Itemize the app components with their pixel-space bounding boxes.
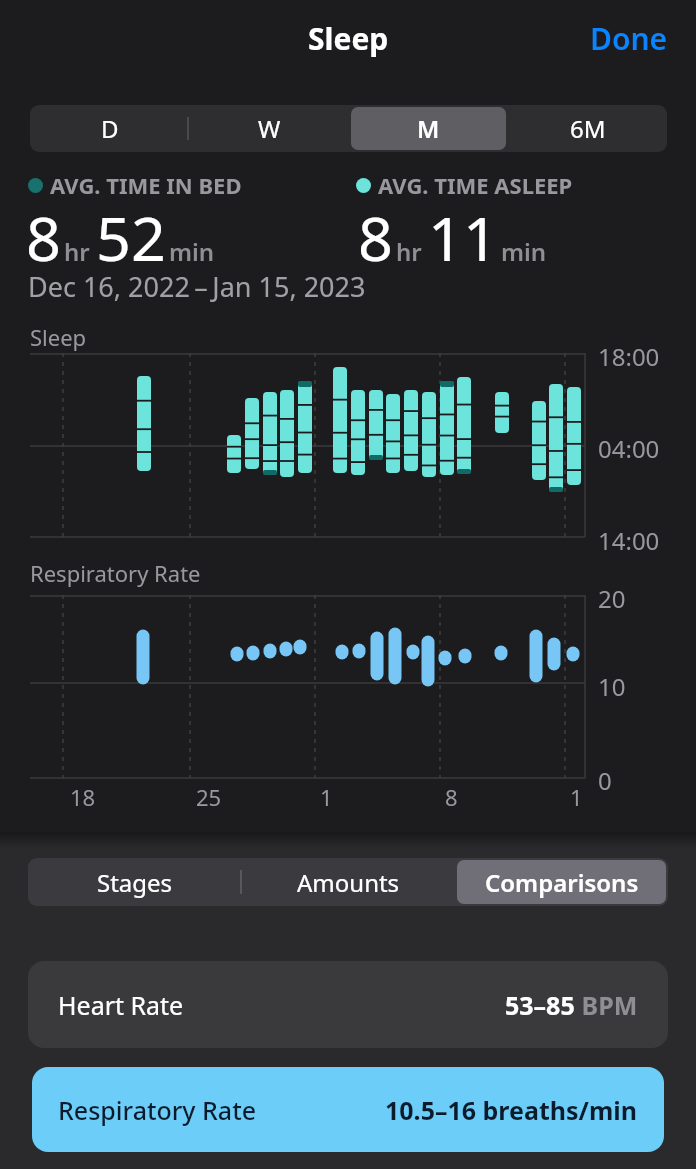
staticText: 20 — [598, 582, 626, 615]
staticText: Dec 16, 2022 – Jan 15, 2023 — [28, 268, 366, 305]
staticText: Heart Rate — [58, 988, 184, 1022]
staticText: 18:00 — [598, 340, 660, 373]
staticText: Sleep — [308, 18, 389, 59]
staticText: Stages — [97, 866, 173, 899]
staticText: W — [258, 112, 281, 145]
staticText: 10.5–16 breaths/min — [385, 1093, 638, 1127]
button[interactable]: Done — [590, 18, 668, 59]
staticText: min — [501, 235, 547, 268]
button[interactable]: Comparisons — [455, 858, 668, 906]
staticText: hr — [64, 235, 90, 268]
staticText: 8 — [26, 196, 61, 279]
staticText: 04:00 — [598, 432, 660, 465]
staticText: Respiratory Rate — [30, 558, 201, 588]
staticText: 6M — [570, 112, 606, 145]
staticText: min — [169, 235, 215, 268]
staticText: hr — [396, 235, 422, 268]
button[interactable]: D — [30, 105, 190, 152]
staticText: AVG. TIME IN BED — [50, 170, 242, 200]
staticText: M — [417, 112, 440, 145]
staticText: Amounts — [297, 866, 400, 899]
staticText: 18 — [70, 782, 96, 812]
staticText: D — [101, 112, 119, 145]
staticText: 25 — [196, 782, 222, 812]
button[interactable]: M — [349, 105, 508, 152]
staticText: 10 — [598, 670, 626, 703]
staticText: 0 — [598, 764, 612, 797]
staticText: Sleep — [30, 322, 87, 352]
staticText: 1 — [320, 782, 333, 812]
button[interactable]: W — [190, 105, 349, 152]
staticText: 52 — [96, 196, 166, 279]
button[interactable]: Stages — [28, 858, 242, 906]
staticText: AVG. TIME ASLEEP — [378, 170, 573, 200]
staticText: 11 — [428, 196, 498, 279]
button[interactable]: Amounts — [242, 858, 455, 906]
button[interactable]: 6M — [508, 105, 667, 152]
button[interactable]: Heart Rate — [28, 961, 668, 1048]
staticText: 1 — [570, 782, 583, 812]
staticText: 8 — [358, 196, 393, 279]
button[interactable]: Respiratory Rate — [32, 1067, 664, 1152]
staticText: 8 — [445, 782, 458, 812]
staticText: BPM — [575, 988, 638, 1022]
staticText: Comparisons — [485, 866, 639, 899]
staticText: 14:00 — [598, 524, 660, 557]
staticText: 53–85 — [505, 988, 575, 1022]
staticText: Respiratory Rate — [58, 1093, 257, 1127]
